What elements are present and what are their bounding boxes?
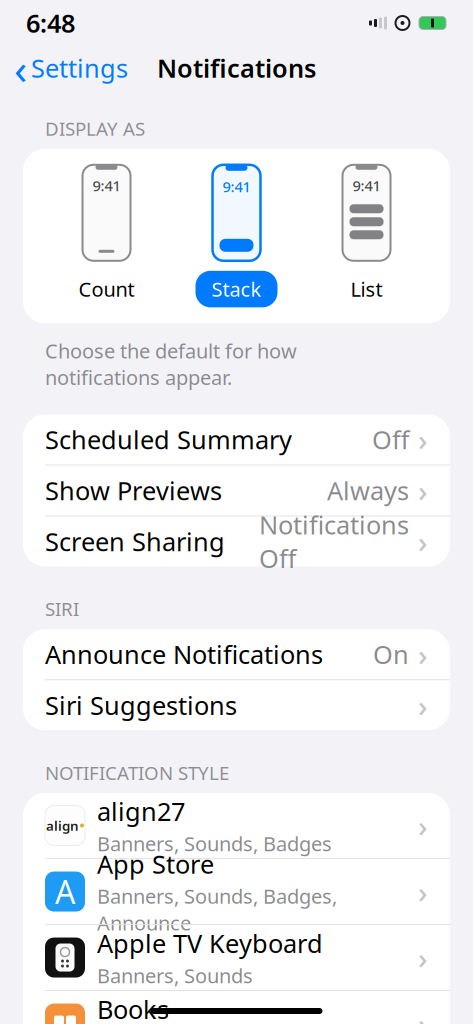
button[interactable]: align: [23, 793, 450, 858]
staticText: ‹: [14, 40, 27, 96]
staticText: Siri Suggestions: [45, 688, 237, 722]
staticText: Announce Notifications: [45, 637, 323, 671]
staticText: ›: [418, 1004, 428, 1024]
staticText: ›: [418, 635, 428, 674]
staticText: align: [46, 817, 79, 834]
button[interactable]: Apple TV Keyboard: [23, 925, 450, 990]
staticText: NOTIFICATION STYLE: [45, 760, 229, 785]
staticText: Notifications: [157, 51, 316, 85]
staticText: Scheduled Summary: [45, 423, 292, 456]
button[interactable]: 9:41: [171, 165, 301, 307]
staticText: Off: [372, 423, 409, 456]
button[interactable]: 9:41: [301, 165, 431, 307]
staticText: Notifications Off: [259, 508, 409, 575]
staticText: Choose the default for how notifications…: [45, 337, 297, 390]
staticText: A: [55, 870, 75, 913]
staticText: 9:41: [92, 176, 120, 195]
staticText: ›: [418, 938, 428, 977]
staticText: ›: [418, 806, 428, 845]
staticText: ›: [418, 420, 428, 459]
staticText: 9:41: [352, 176, 380, 195]
button[interactable]: 9:41: [41, 165, 171, 307]
button[interactable]: A: [23, 859, 450, 924]
staticText: Count: [78, 276, 134, 302]
button[interactable]: Books: [23, 991, 450, 1024]
button[interactable]: Show Previews: [23, 465, 450, 515]
staticText: ›: [418, 872, 428, 911]
staticText: Books: [97, 992, 169, 1024]
button[interactable]: Scheduled Summary: [23, 414, 450, 464]
staticText: 9:41: [222, 177, 250, 196]
staticText: Banners, Sounds, Badges, Announce: [97, 883, 337, 936]
button[interactable]: Screen Sharing: [23, 516, 450, 566]
button[interactable]: Announce Notifications: [23, 629, 450, 679]
staticText: ›: [418, 522, 428, 561]
staticText: Screen Sharing: [45, 525, 225, 558]
staticText: ›: [418, 686, 428, 725]
staticText: Banners, Sounds: [97, 962, 253, 989]
staticText: Banners, Sounds, Badges: [97, 830, 332, 857]
staticText: ›: [418, 471, 428, 510]
staticText: 6:48: [26, 6, 75, 40]
staticText: Apple TV Keyboard: [97, 926, 323, 960]
staticText: On: [373, 637, 409, 671]
staticText: App Store: [97, 847, 214, 881]
staticText: List: [350, 276, 382, 302]
staticText: Settings: [31, 51, 128, 85]
staticText: Stack: [211, 276, 261, 302]
staticText: Show Previews: [45, 474, 222, 507]
button[interactable]: Siri Suggestions: [23, 680, 450, 730]
button[interactable]: ‹: [0, 46, 142, 90]
staticText: DISPLAY AS: [45, 116, 145, 141]
staticText: Always: [327, 474, 409, 507]
staticText: align27: [97, 794, 185, 828]
staticText: SIRI: [45, 596, 79, 621]
